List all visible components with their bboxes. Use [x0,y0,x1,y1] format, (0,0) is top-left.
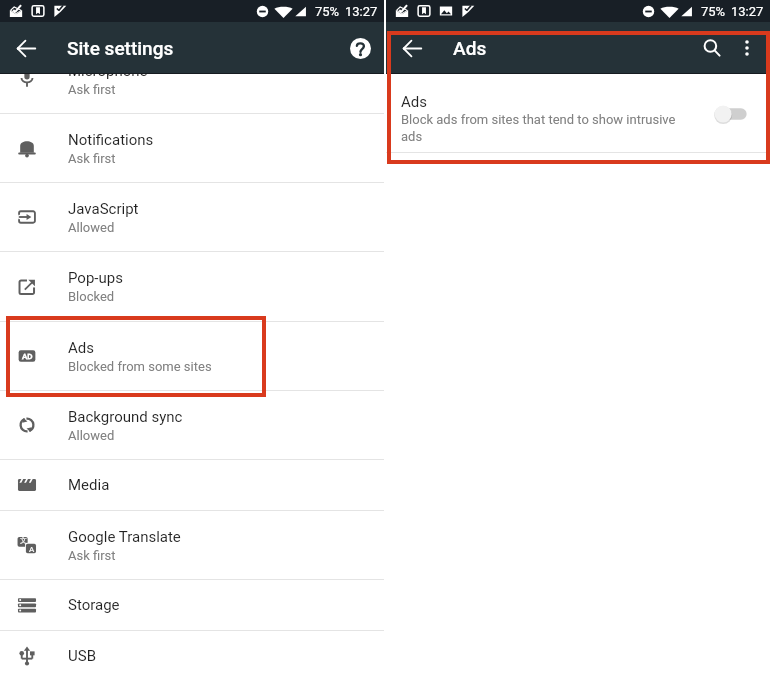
staticText: Blocked from some sites [68,359,212,374]
staticText: Notifications [68,131,154,149]
staticText: AD [22,352,33,361]
staticText: 13:27 [345,4,378,19]
button[interactable]: Background sync [0,391,384,459]
button[interactable]: Pop-ups [0,252,384,321]
button[interactable]: Media [0,460,384,510]
button[interactable]: Storage [0,580,384,630]
staticText: Background sync [68,408,183,426]
staticText: Storage [68,596,120,614]
staticText: 13:27 [731,4,764,19]
staticText: Microphone [68,62,148,80]
staticText: Pop-ups [68,269,123,287]
staticText: 75% [315,4,340,19]
staticText: 文 [20,536,27,545]
staticText: Allowed [68,428,115,443]
button[interactable]: Notifications [0,114,384,182]
staticText: Google Translate [68,528,181,546]
staticText: Blocked [68,289,115,304]
staticText: USB [68,647,96,665]
staticText: 75% [701,4,726,19]
staticText: Ads [68,339,94,357]
staticText: Ads [453,37,487,59]
button[interactable]: 文 [0,511,384,579]
button[interactable]: JavaScript [0,183,384,251]
staticText: JavaScript [68,200,139,218]
button[interactable]: Toggle ads blocking [708,99,754,129]
staticText: Block ads from sites that tend to show i… [401,112,691,145]
staticText: Ads [401,93,427,111]
button[interactable]: Microphone [0,45,384,113]
staticText: Ask first [68,548,116,563]
button[interactable]: Navigate up [8,30,44,66]
staticText: Ask first [68,151,116,166]
button[interactable]: Search [694,30,730,66]
staticText: A [29,545,35,554]
button[interactable]: Navigate up [394,30,430,66]
button[interactable]: USB [0,631,384,681]
staticText: Media [68,476,110,494]
staticText: Allowed [68,220,115,235]
button[interactable]: AD [0,322,384,390]
button[interactable]: More options [730,31,764,65]
button[interactable]: Ads [386,74,770,152]
staticText: Ask first [68,82,116,97]
staticText: Site settings [67,37,174,59]
button[interactable]: Help [342,30,378,66]
